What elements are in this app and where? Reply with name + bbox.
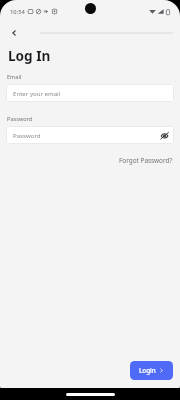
button[interactable]: Enter your email bbox=[6, 84, 174, 102]
button[interactable]: Back bbox=[8, 27, 20, 39]
staticText: Email bbox=[7, 73, 22, 81]
button[interactable]: Login bbox=[130, 361, 173, 380]
button[interactable]: Password bbox=[6, 126, 174, 144]
staticText: Password bbox=[7, 115, 33, 123]
staticText: Login bbox=[139, 366, 156, 375]
staticText: Password bbox=[13, 131, 41, 139]
staticText: Log In bbox=[8, 46, 51, 65]
button[interactable]: Show password bbox=[158, 129, 170, 141]
staticText: 10:54 bbox=[10, 8, 25, 16]
button[interactable]: Forgot Password? bbox=[119, 156, 173, 165]
staticText: Enter your email bbox=[13, 89, 61, 97]
staticText: Forgot Password? bbox=[119, 156, 173, 165]
